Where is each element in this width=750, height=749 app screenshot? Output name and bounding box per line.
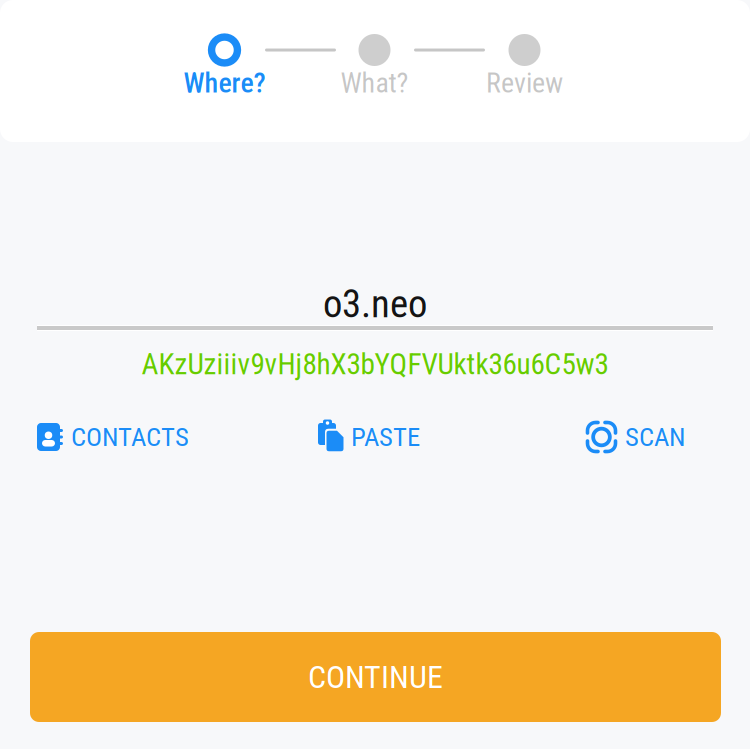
staticText: AKzUziiiv9vHj8hX3bYQFVUktk36u6C5w3 (141, 347, 608, 381)
staticText: SCAN (625, 421, 686, 453)
staticText: CONTINUE (308, 658, 443, 696)
button[interactable]: SCAN (586, 421, 686, 453)
staticText: PASTE (351, 421, 420, 453)
button[interactable]: CONTACTS (37, 421, 189, 453)
staticText: Where? (183, 67, 265, 99)
staticText: o3.neo (323, 281, 427, 327)
staticText: What? (340, 67, 408, 99)
button[interactable]: CONTINUE (30, 632, 721, 722)
staticText: Review (486, 67, 563, 99)
staticText: CONTACTS (71, 421, 189, 453)
button[interactable]: PASTE (318, 421, 420, 453)
